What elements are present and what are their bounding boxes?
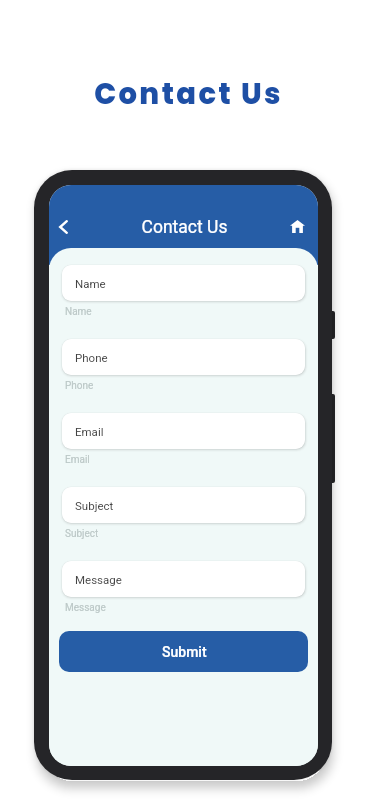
staticText: Message: [65, 602, 106, 614]
staticText: Message: [75, 573, 122, 586]
button[interactable]: Back: [52, 216, 74, 238]
staticText: Contact Us: [4, 74, 369, 115]
staticText: Name: [75, 277, 106, 290]
button[interactable]: Message: [62, 561, 305, 597]
staticText: Phone: [65, 380, 94, 392]
button[interactable]: Home: [286, 215, 308, 237]
button[interactable]: Submit: [59, 631, 308, 672]
staticText: Name: [65, 306, 92, 318]
button[interactable]: Name: [62, 265, 305, 301]
staticText: Contact Us: [50, 217, 318, 238]
staticText: Submit: [162, 644, 207, 660]
staticText: Phone: [75, 351, 108, 364]
staticText: Email: [75, 425, 104, 438]
button[interactable]: Phone: [62, 339, 305, 375]
button[interactable]: Subject: [62, 487, 305, 523]
staticText: Subject: [75, 499, 114, 512]
button[interactable]: Email: [62, 413, 305, 449]
staticText: Email: [65, 454, 90, 466]
staticText: Subject: [65, 528, 99, 540]
